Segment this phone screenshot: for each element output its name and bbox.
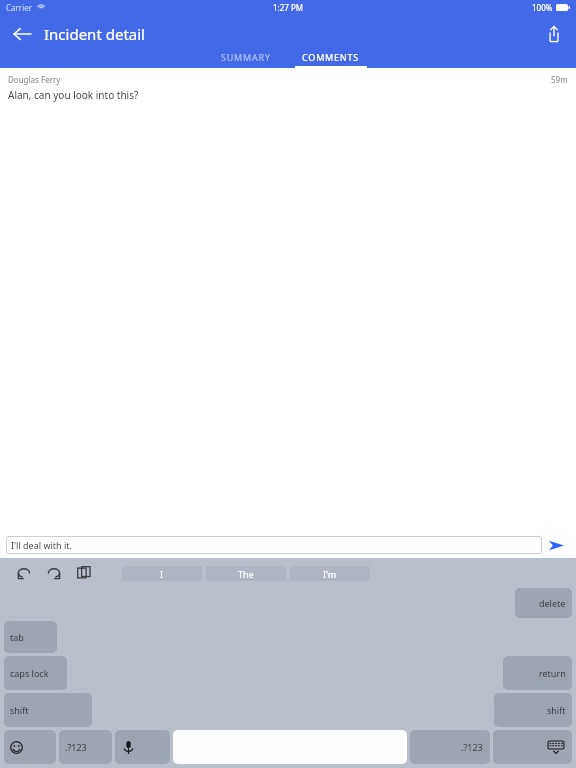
button[interactable]: Emoji: [4, 730, 56, 764]
button[interactable]: Hide keyboard: [493, 730, 572, 764]
staticText: SUMMARY: [221, 51, 271, 63]
button[interactable]: return: [503, 656, 572, 690]
button[interactable]: COMMENTS: [288, 46, 373, 68]
button[interactable]: The: [206, 566, 286, 581]
staticText: I: [160, 568, 164, 580]
staticText: caps lock: [10, 667, 49, 679]
button[interactable]: I: [122, 566, 202, 581]
button[interactable]: Paste: [70, 559, 98, 587]
button[interactable]: Space: [173, 730, 407, 764]
button[interactable]: shift: [494, 693, 572, 727]
staticText: Incident detail: [44, 24, 145, 44]
button[interactable]: Redo: [40, 559, 68, 587]
staticText: COMMENTS: [302, 51, 360, 63]
button[interactable]: I'll deal with it.: [6, 536, 542, 554]
button[interactable]: shift: [4, 693, 92, 727]
button[interactable]: delete: [515, 588, 572, 618]
staticText: 100%: [532, 2, 553, 13]
staticText: I'm: [323, 568, 337, 580]
staticText: shift: [547, 704, 566, 716]
button[interactable]: tab: [4, 621, 57, 653]
staticText: The: [238, 568, 254, 580]
staticText: I'll deal with it.: [11, 539, 72, 551]
button[interactable]: SUMMARY: [203, 46, 288, 68]
button[interactable]: Undo: [10, 559, 38, 587]
staticText: shift: [10, 704, 29, 716]
button[interactable]: Send: [542, 532, 570, 558]
button[interactable]: .?123: [59, 730, 112, 764]
staticText: .?123: [461, 741, 483, 753]
staticText: delete: [539, 597, 566, 609]
staticText: Carrier: [6, 2, 33, 13]
button[interactable]: caps lock: [4, 656, 67, 690]
button[interactable]: I'm: [290, 566, 370, 581]
staticText: 1:27 PM: [273, 2, 304, 13]
staticText: Douglas Ferry: [8, 74, 61, 85]
staticText: tab: [10, 631, 24, 643]
button[interactable]: Share: [532, 14, 576, 54]
staticText: return: [539, 667, 566, 679]
button[interactable]: .?123: [410, 730, 490, 764]
button[interactable]: Back: [0, 14, 44, 54]
staticText: Alan, can you look into this?: [8, 88, 139, 102]
staticText: 59m: [551, 74, 568, 85]
staticText: .?123: [65, 741, 87, 753]
button[interactable]: Voice input: [115, 730, 170, 764]
